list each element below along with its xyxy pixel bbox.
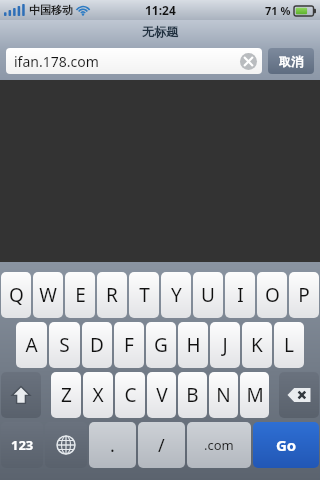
button[interactable]: Shift <box>1 372 41 418</box>
staticText: G <box>154 332 168 358</box>
button[interactable]: 123 <box>1 422 43 468</box>
button[interactable]: X <box>83 372 113 418</box>
staticText: P <box>298 282 310 308</box>
button[interactable]: Q <box>1 272 31 318</box>
staticText: 71 % <box>265 3 291 18</box>
staticText: N <box>216 382 231 408</box>
button[interactable]: H <box>178 322 208 368</box>
button[interactable]: K <box>242 322 272 368</box>
button[interactable]: Backspace <box>279 372 319 418</box>
staticText: L <box>284 332 294 358</box>
button[interactable]: J <box>210 322 240 368</box>
button[interactable]: V <box>147 372 176 418</box>
staticText: S <box>59 332 70 358</box>
staticText: D <box>90 332 104 358</box>
staticText: J <box>222 332 228 358</box>
staticText: E <box>75 282 86 308</box>
staticText: 11:24 <box>145 2 176 18</box>
button[interactable]: / <box>138 422 185 468</box>
button[interactable]: R <box>97 272 127 318</box>
button[interactable]: Z <box>51 372 81 418</box>
button[interactable]: S <box>49 322 80 368</box>
button[interactable]: F <box>114 322 144 368</box>
button[interactable]: O <box>257 272 287 318</box>
staticText: Go <box>276 435 297 455</box>
button[interactable]: E <box>65 272 95 318</box>
staticText: T <box>139 282 150 308</box>
staticText: U <box>201 282 215 308</box>
button[interactable]: L <box>274 322 304 368</box>
button[interactable]: T <box>129 272 159 318</box>
staticText: I <box>237 282 244 308</box>
button[interactable]: P <box>289 272 319 318</box>
button[interactable]: I <box>225 272 255 318</box>
staticText: 无标题 <box>142 24 178 39</box>
staticText: K <box>251 332 263 358</box>
button[interactable]: U <box>193 272 223 318</box>
staticText: 取消 <box>279 54 303 69</box>
button[interactable]: .com <box>187 422 251 468</box>
staticText: C <box>124 382 137 408</box>
button[interactable]: N <box>209 372 238 418</box>
staticText: Q <box>9 282 24 308</box>
staticText: F <box>124 332 134 358</box>
staticText: A <box>25 332 38 358</box>
button[interactable]: 取消 <box>268 48 314 74</box>
staticText: M <box>246 382 264 408</box>
staticText: V <box>156 382 168 408</box>
button[interactable]: C <box>115 372 145 418</box>
staticText: Y <box>171 282 182 308</box>
staticText: / <box>158 433 165 458</box>
staticText: X <box>92 382 104 408</box>
button[interactable]: M <box>240 372 269 418</box>
button[interactable]: G <box>146 322 176 368</box>
button[interactable]: Go <box>253 422 319 468</box>
staticText: 123 <box>11 436 34 454</box>
staticText: B <box>186 382 199 408</box>
button[interactable]: A <box>16 322 47 368</box>
button[interactable]: Change keyboard <box>45 422 87 468</box>
button[interactable]: W <box>33 272 63 318</box>
button[interactable]: D <box>82 322 112 368</box>
staticText: R <box>106 282 118 308</box>
staticText: Z <box>61 382 72 408</box>
button[interactable]: Y <box>161 272 191 318</box>
staticText: W <box>39 282 57 308</box>
staticText: .com <box>204 436 234 454</box>
staticText: 中国移动 <box>29 3 73 17</box>
button[interactable]: ifan.178.com <box>6 48 262 74</box>
button[interactable]: Clear text <box>240 53 257 70</box>
button[interactable]: . <box>89 422 136 468</box>
staticText: H <box>186 332 201 358</box>
staticText: ifan.178.com <box>14 52 99 71</box>
staticText: . <box>110 433 115 458</box>
staticText: O <box>265 282 280 308</box>
button[interactable]: B <box>178 372 207 418</box>
